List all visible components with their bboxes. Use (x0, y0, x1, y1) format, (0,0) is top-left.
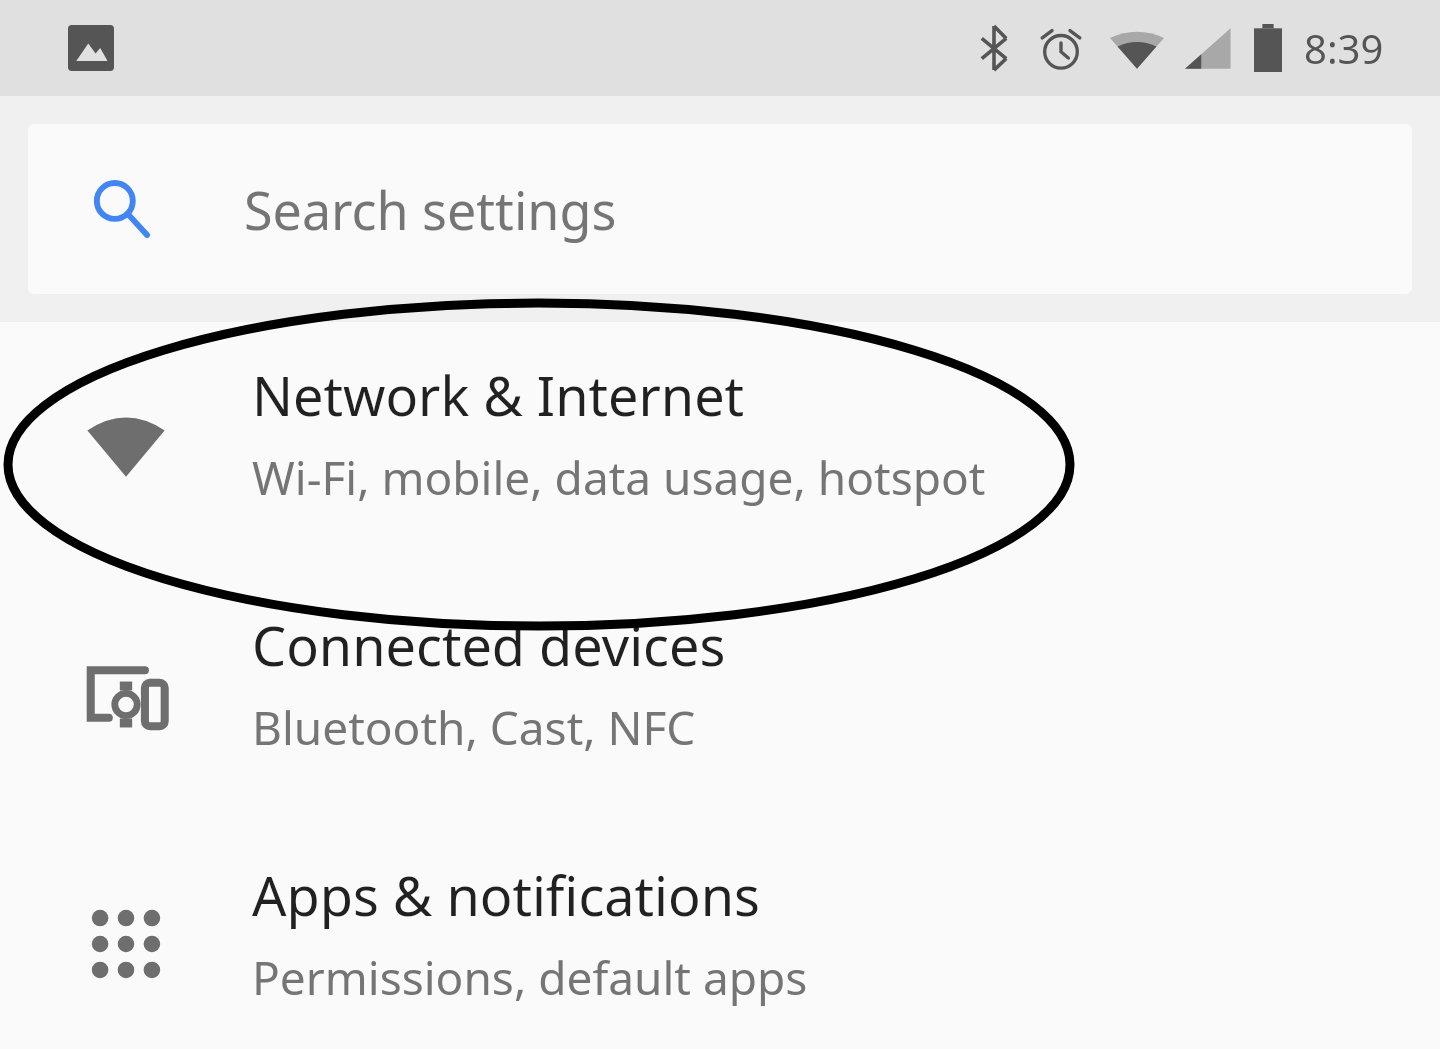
staticText: Wi-Fi, mobile, data usage, hotspot (252, 446, 986, 509)
button[interactable]: Apps & notifications (0, 822, 1440, 1049)
staticText: Apps & notifications (252, 858, 760, 932)
button[interactable]: Search (28, 124, 1412, 294)
staticText: Permissions, default apps (252, 946, 808, 1009)
staticText: Connected devices (252, 608, 726, 682)
staticText: Search settings (244, 174, 617, 245)
other: Search (90, 178, 152, 240)
button[interactable]: Network & Internet (0, 322, 1440, 572)
staticText: Network & Internet (252, 358, 745, 432)
staticText: Bluetooth, Cast, NFC (252, 696, 696, 759)
button[interactable]: Connected devices (0, 572, 1440, 822)
staticText: 8:39 (1304, 21, 1384, 75)
